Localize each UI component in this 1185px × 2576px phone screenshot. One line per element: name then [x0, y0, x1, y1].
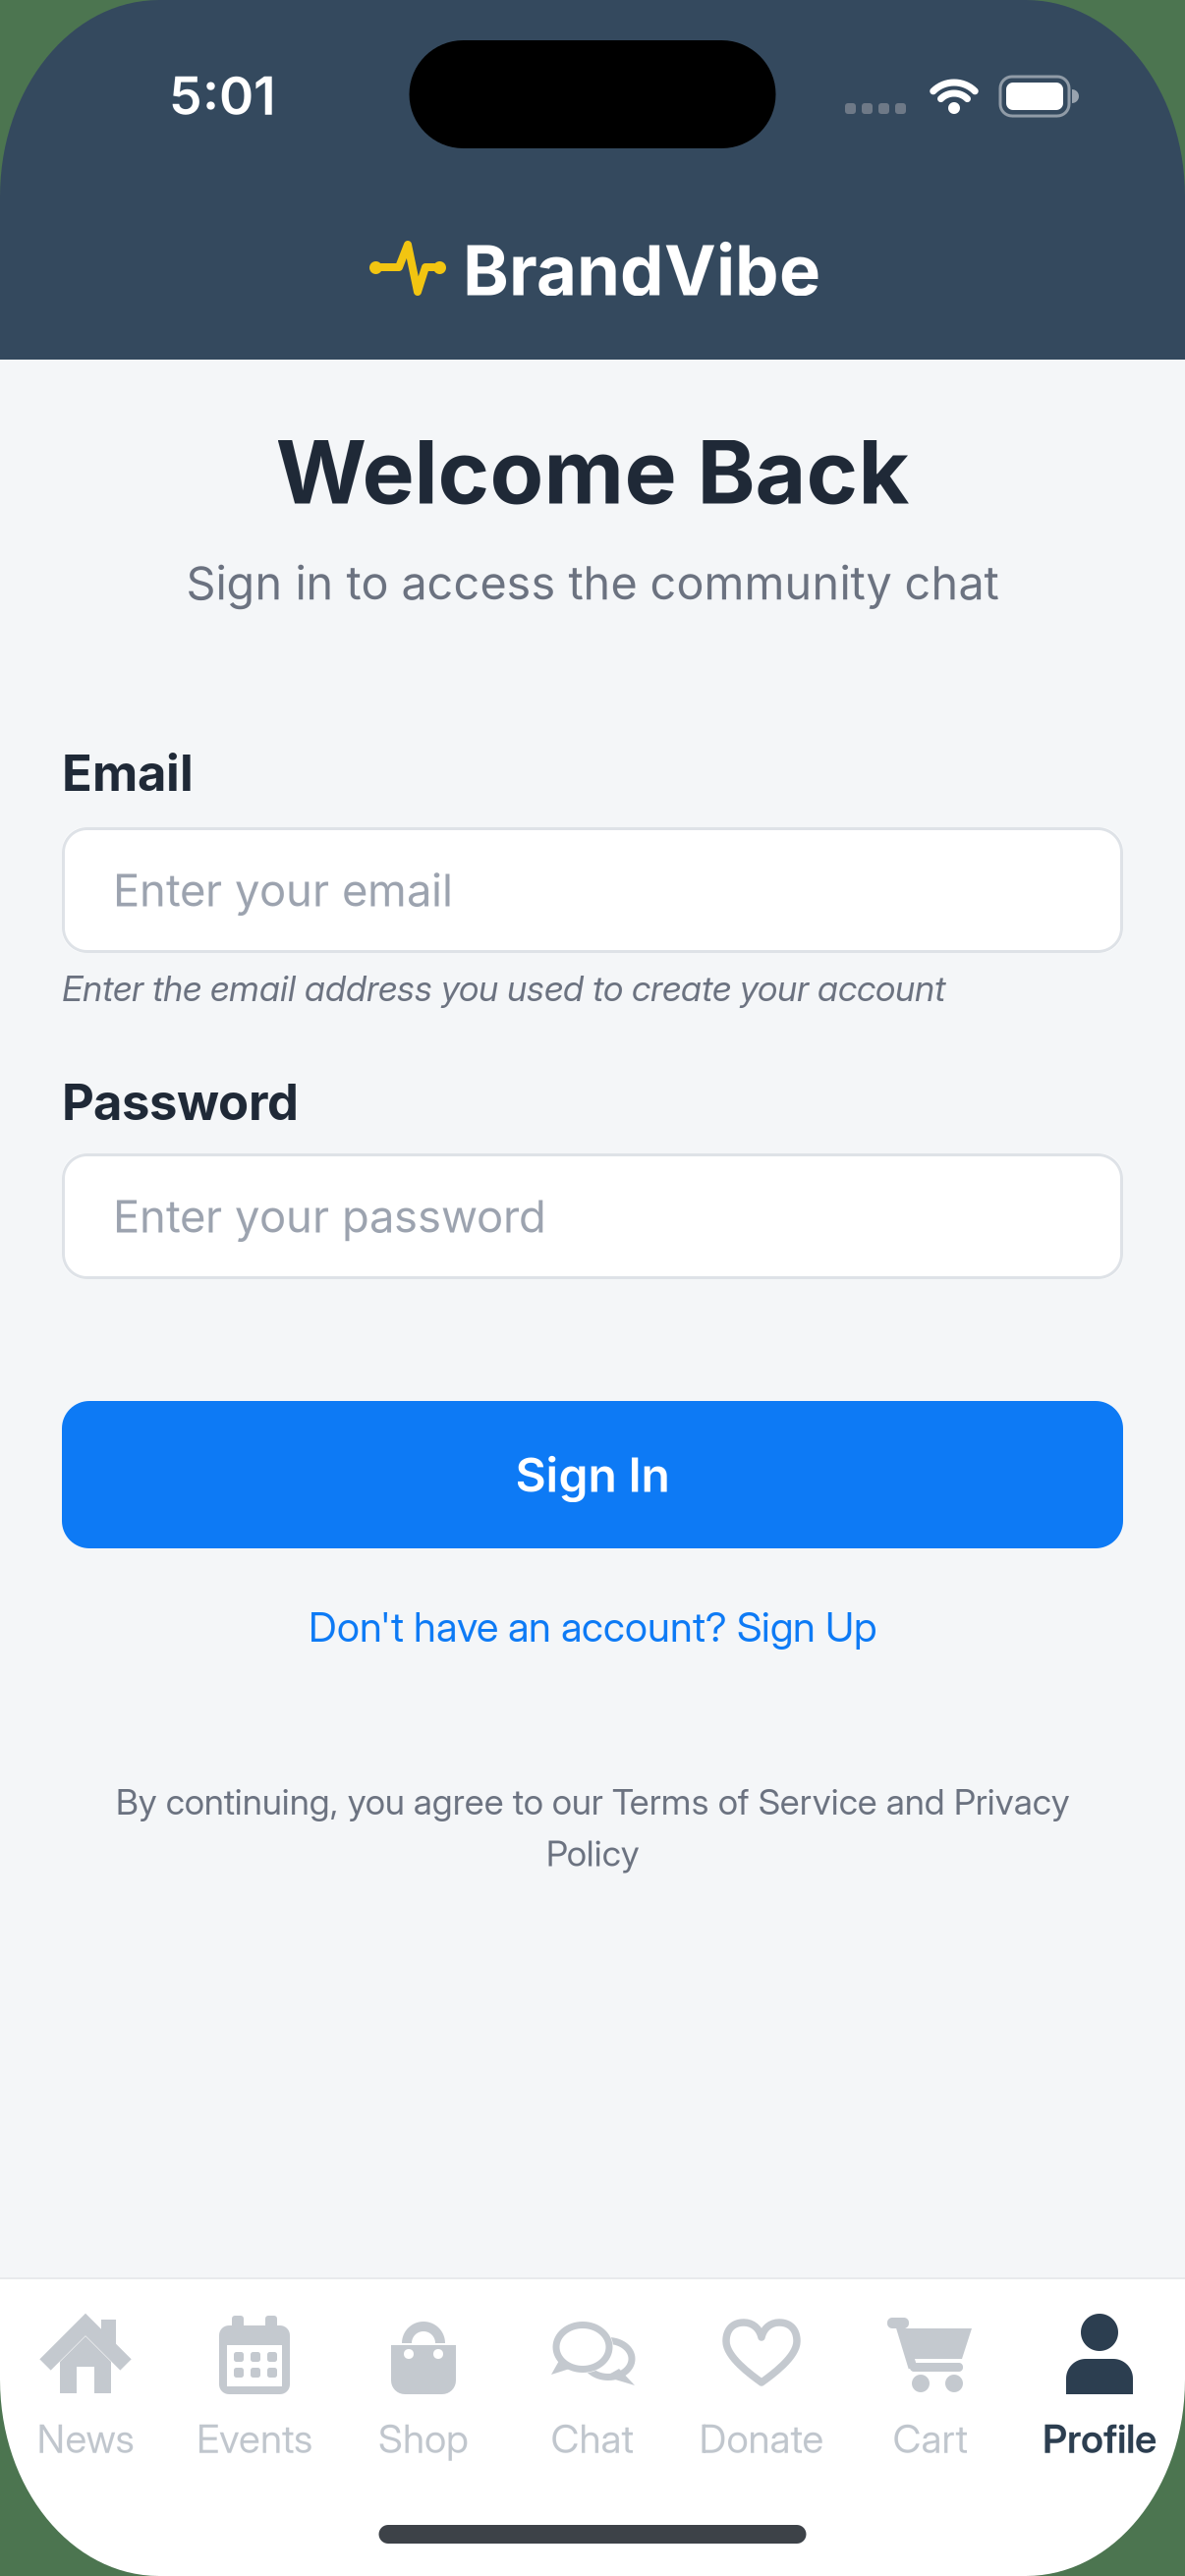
staticText: Enter your email	[113, 863, 453, 917]
staticText: Welcome Back	[276, 419, 909, 525]
staticText: Donate	[699, 2415, 824, 2462]
staticText: Chat	[551, 2415, 634, 2462]
staticText: Email	[62, 743, 194, 803]
staticText: Sign In	[515, 1446, 670, 1503]
staticText: Enter the email address you used to crea…	[62, 967, 945, 1010]
staticText: Don't have an account? Sign Up	[309, 1602, 876, 1652]
staticText: Password	[62, 1072, 299, 1132]
staticText: Sign in to access the community chat	[186, 555, 999, 611]
staticText: Shop	[378, 2415, 469, 2462]
staticText: Profile	[1043, 2415, 1157, 2462]
staticText: Enter your password	[113, 1189, 546, 1243]
staticText: 5:01	[169, 64, 276, 127]
staticText: Cart	[893, 2415, 968, 2462]
staticText: Events	[197, 2415, 312, 2462]
staticText: By continuing, you agree to our Terms of…	[115, 1780, 1070, 1875]
staticText: News	[37, 2415, 134, 2462]
staticText: BrandVibe	[463, 228, 820, 312]
